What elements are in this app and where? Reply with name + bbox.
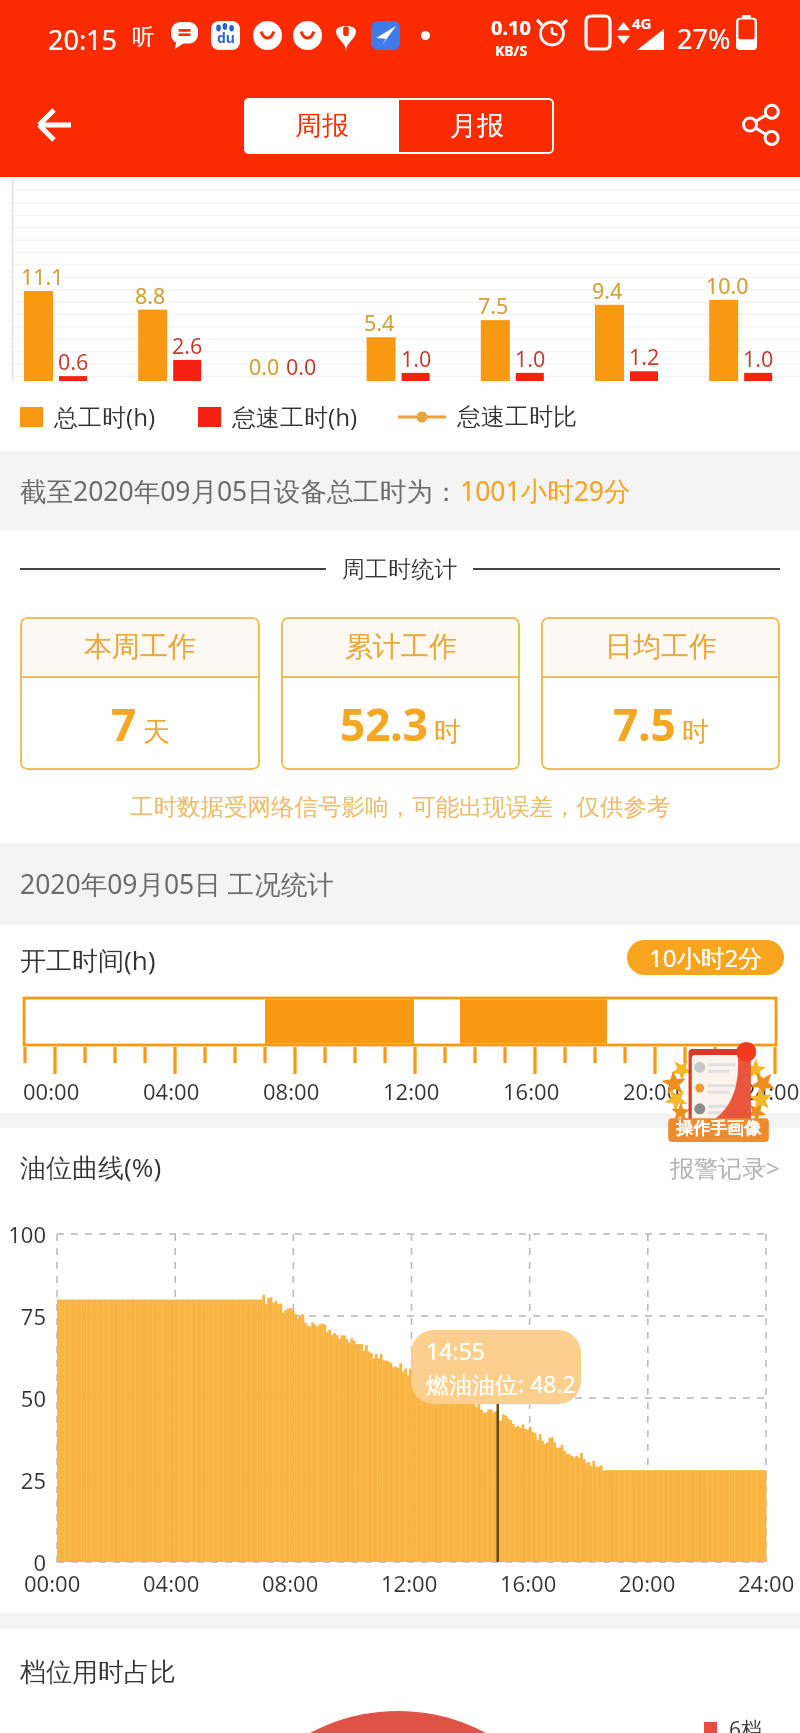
staticText: 08:00: [262, 1568, 319, 1598]
staticText: 0.6: [58, 347, 89, 376]
staticText: 7.5: [613, 694, 676, 754]
staticText: 14:55: [426, 1335, 485, 1366]
staticText: 累计工作: [345, 629, 457, 664]
staticText: 9.4: [592, 276, 623, 305]
staticText: 50: [0, 1383, 46, 1413]
staticText: 10小时2分: [649, 941, 763, 974]
staticText: 00:00: [23, 1076, 80, 1106]
button[interactable]: 10小时2分: [627, 940, 784, 975]
staticText: 20:00: [623, 1076, 680, 1106]
staticText: 操作手画像: [676, 1118, 761, 1139]
staticText: 24:00: [738, 1568, 795, 1598]
staticText: 时: [434, 715, 461, 749]
staticText: 20:15: [48, 21, 118, 58]
staticText: 25: [0, 1465, 46, 1495]
staticText: 怠速工时(h): [232, 400, 358, 433]
staticText: 1.0: [743, 344, 774, 373]
staticText: 7: [111, 694, 137, 754]
staticText: 报警记录>: [670, 1151, 780, 1184]
button[interactable]: Back: [16, 93, 80, 157]
staticText: KB/S: [495, 41, 528, 60]
staticText: 0: [0, 1547, 46, 1577]
staticText: 周报: [295, 109, 349, 143]
staticText: 7.5: [478, 291, 509, 320]
staticText: 11.1: [21, 262, 64, 291]
button[interactable]: 日均工作: [541, 617, 780, 770]
staticText: 6档: [729, 1715, 763, 1733]
staticText: 0.0: [286, 352, 317, 381]
staticText: 燃油油位: 48.2: [426, 1368, 576, 1399]
button[interactable]: 累计工作: [281, 617, 520, 770]
staticText: 12:00: [381, 1568, 438, 1598]
staticText: 52.3: [340, 694, 428, 754]
staticText: 开工时间(h): [20, 942, 156, 978]
button[interactable]: 月报: [399, 98, 554, 154]
button[interactable]: 报警记录>: [670, 1151, 780, 1184]
button[interactable]: Share: [732, 97, 788, 153]
staticText: 1001小时29分: [460, 473, 631, 509]
staticText: 工时数据受网络信号影响，可能出现误差，仅供参考: [130, 792, 671, 822]
staticText: 10.0: [706, 271, 749, 300]
staticText: 油位曲线(%): [20, 1149, 162, 1185]
staticText: 时: [682, 715, 709, 749]
staticText: 8.8: [135, 281, 166, 310]
staticText: 天: [143, 715, 170, 749]
button[interactable]: 周报: [244, 98, 399, 154]
staticText: 27%: [677, 20, 731, 57]
staticText: 00:00: [24, 1568, 81, 1598]
staticText: 0.0: [249, 352, 280, 381]
staticText: 听: [132, 23, 154, 51]
staticText: 周工时统计: [342, 555, 457, 584]
staticText: 0.10: [491, 14, 531, 41]
staticText: 04:00: [143, 1568, 200, 1598]
staticText: 日均工作: [605, 629, 717, 664]
staticText: 08:00: [263, 1076, 320, 1106]
staticText: 月报: [450, 109, 504, 143]
staticText: 75: [0, 1301, 46, 1331]
staticText: 本周工作: [84, 629, 196, 664]
staticText: 1.0: [401, 344, 432, 373]
staticText: 2020年09月05日 工况统计: [20, 866, 334, 902]
staticText: 5.4: [364, 308, 395, 337]
staticText: du: [217, 28, 235, 47]
button[interactable]: 本周工作: [20, 617, 260, 770]
staticText: 24:00: [743, 1076, 800, 1106]
staticText: 总工时(h): [54, 400, 156, 433]
staticText: 怠速工时比: [457, 402, 577, 432]
staticText: 12:00: [383, 1076, 440, 1106]
staticText: 16:00: [503, 1076, 560, 1106]
staticText: 截至2020年09月05日设备总工时为：: [20, 473, 460, 509]
staticText: 100: [0, 1219, 46, 1249]
staticText: 1.2: [629, 342, 660, 371]
staticText: 4G: [632, 13, 652, 33]
staticText: 档位用时占比: [20, 1656, 176, 1689]
staticText: 04:00: [143, 1076, 200, 1106]
staticText: 20:00: [619, 1568, 676, 1598]
staticText: 16:00: [500, 1568, 557, 1598]
staticText: 2.6: [172, 331, 203, 360]
staticText: 1.0: [515, 344, 546, 373]
